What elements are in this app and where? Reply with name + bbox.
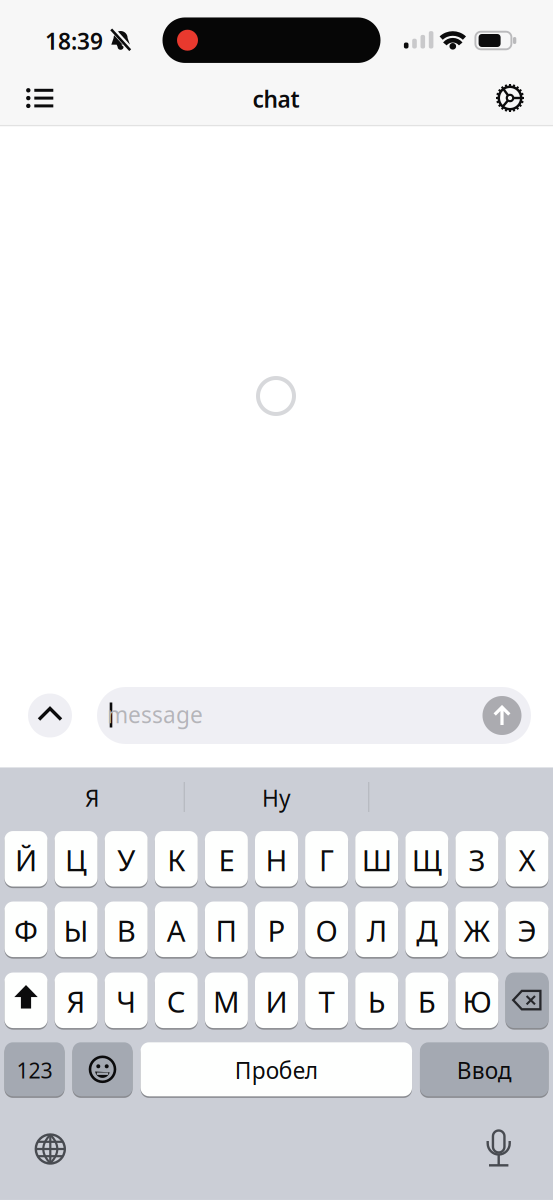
staticText: Щ bbox=[412, 840, 442, 879]
button[interactable]: Щ bbox=[405, 831, 448, 886]
staticText: О bbox=[316, 911, 338, 950]
staticText: Р bbox=[267, 911, 285, 950]
staticText: Н bbox=[265, 840, 287, 879]
staticText: М bbox=[213, 982, 240, 1021]
staticText: Я bbox=[85, 783, 99, 813]
staticText: 123 bbox=[16, 1056, 52, 1084]
button[interactable]: Е bbox=[205, 831, 248, 886]
staticText: 18:39 bbox=[45, 26, 103, 56]
button[interactable]: К bbox=[155, 831, 198, 886]
staticText: И bbox=[265, 982, 287, 1021]
staticText: Ввод bbox=[457, 1055, 512, 1085]
staticText: message bbox=[107, 699, 203, 729]
staticText: Пробел bbox=[235, 1055, 318, 1085]
staticText: Ч bbox=[116, 982, 136, 1021]
button[interactable]: Д bbox=[405, 901, 448, 957]
staticText: У bbox=[117, 840, 135, 879]
button[interactable]: Send bbox=[482, 696, 521, 735]
button[interactable]: Ну bbox=[196, 770, 356, 826]
staticText: Ы bbox=[64, 911, 89, 950]
button[interactable]: З bbox=[455, 831, 498, 886]
staticText: Ь bbox=[368, 982, 386, 1021]
staticText: З bbox=[468, 840, 485, 879]
staticText: К bbox=[167, 840, 185, 879]
button[interactable]: Ь bbox=[355, 972, 398, 1028]
button[interactable]: И bbox=[255, 972, 298, 1028]
staticText: Ш bbox=[362, 840, 392, 879]
button[interactable]: 123 bbox=[4, 1042, 64, 1096]
button[interactable]: Ввод bbox=[420, 1042, 548, 1096]
button[interactable]: М bbox=[205, 972, 248, 1028]
staticText: Ф bbox=[14, 911, 38, 950]
button[interactable]: Delete bbox=[505, 972, 548, 1028]
button[interactable]: Ж bbox=[455, 901, 498, 957]
button[interactable]: Dictation bbox=[477, 1126, 521, 1170]
button[interactable]: Ф bbox=[4, 901, 47, 957]
button[interactable]: Н bbox=[255, 831, 298, 886]
button[interactable]: Й bbox=[4, 831, 47, 886]
button[interactable]: Р bbox=[255, 901, 298, 957]
staticText: Ну bbox=[262, 783, 291, 813]
button[interactable]: Х bbox=[505, 831, 548, 886]
staticText: Г bbox=[319, 840, 334, 879]
button[interactable]: У bbox=[105, 831, 148, 886]
staticText: П bbox=[215, 911, 237, 950]
staticText: А bbox=[167, 911, 186, 950]
staticText: Э bbox=[517, 911, 536, 950]
button[interactable]: Chats bbox=[19, 78, 63, 118]
button[interactable]: А bbox=[155, 901, 198, 957]
staticText: Ж bbox=[463, 911, 490, 950]
staticText: С bbox=[167, 982, 186, 1021]
button[interactable]: В bbox=[105, 901, 148, 957]
staticText: Х bbox=[518, 840, 535, 879]
button[interactable]: Б bbox=[405, 972, 448, 1028]
button[interactable]: Emoji bbox=[72, 1042, 132, 1096]
staticText: В bbox=[117, 911, 136, 950]
staticText: Л bbox=[367, 911, 387, 950]
button[interactable]: Ч bbox=[105, 972, 148, 1028]
button[interactable]: Next keyboard bbox=[28, 1127, 72, 1171]
button[interactable]: Л bbox=[355, 901, 398, 957]
button[interactable]: Ш bbox=[355, 831, 398, 886]
button[interactable]: Э bbox=[505, 901, 548, 957]
staticText: Ю bbox=[462, 982, 491, 1021]
staticText: Т bbox=[319, 982, 335, 1021]
button[interactable]: Ц bbox=[55, 831, 98, 886]
button[interactable]: Пробел bbox=[141, 1042, 412, 1096]
button[interactable]: О bbox=[305, 901, 348, 957]
staticText: Б bbox=[418, 982, 436, 1021]
staticText: Й bbox=[15, 840, 37, 879]
button[interactable]: Settings bbox=[488, 76, 532, 120]
staticText: Я bbox=[67, 982, 86, 1021]
button[interactable]: Message bbox=[97, 687, 531, 744]
button[interactable]: Я bbox=[55, 972, 98, 1028]
button[interactable]: Shift bbox=[4, 972, 47, 1028]
button[interactable]: Collapse bbox=[28, 693, 72, 737]
button[interactable]: Я bbox=[12, 770, 172, 826]
button[interactable]: П bbox=[205, 901, 248, 957]
button[interactable]: Г bbox=[305, 831, 348, 886]
staticText: chat bbox=[252, 84, 299, 114]
button[interactable]: Ю bbox=[455, 972, 498, 1028]
staticText: Ц bbox=[65, 840, 87, 879]
button[interactable]: С bbox=[155, 972, 198, 1028]
staticText: Д bbox=[416, 911, 437, 950]
button[interactable]: Ы bbox=[55, 901, 98, 957]
staticText: Е bbox=[218, 840, 234, 879]
button[interactable]: Т bbox=[305, 972, 348, 1028]
